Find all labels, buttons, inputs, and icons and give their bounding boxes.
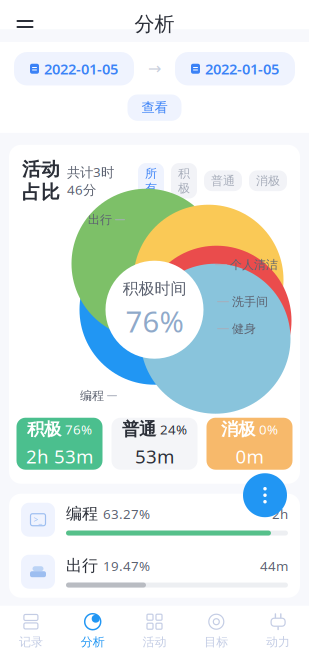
staticText: 76% — [65, 420, 92, 438]
staticText: 分析 — [134, 12, 174, 36]
staticText: 所有 — [145, 166, 157, 195]
staticText: 0% — [259, 420, 278, 438]
staticText: 活动占比 — [22, 158, 60, 204]
button[interactable]: 消极 — [206, 418, 292, 470]
button[interactable]: More options — [243, 473, 287, 517]
staticText: 积极时间 — [122, 279, 186, 299]
button[interactable]: 普通 — [204, 170, 242, 191]
staticText: 分析 — [81, 635, 105, 649]
staticText: 查看 — [141, 99, 167, 116]
button[interactable]: 消极 — [249, 170, 287, 191]
button[interactable]: 普通 — [111, 418, 197, 470]
staticText: 积极 — [178, 166, 190, 195]
staticText: 积极 — [27, 419, 61, 440]
staticText: 动力 — [266, 635, 290, 649]
staticText: 24% — [160, 420, 187, 438]
staticText: 2h 53m — [26, 444, 93, 469]
staticText: 76% — [125, 302, 183, 341]
button[interactable]: Menu — [10, 9, 40, 39]
staticText: 普通 — [211, 173, 235, 188]
staticText: 2022-01-05 — [44, 59, 118, 78]
staticText: 消极 — [256, 173, 280, 188]
staticText: 出行 — [66, 556, 98, 576]
staticText: 健身 — [232, 321, 256, 336]
staticText: 记录 — [19, 635, 43, 649]
staticText: 编程 — [66, 504, 98, 524]
staticText: 0m — [235, 444, 263, 469]
staticText: 活动 — [142, 635, 166, 649]
staticText: 洗手间 — [232, 294, 268, 309]
button[interactable]: 目标 — [185, 613, 247, 649]
staticText: >_ — [33, 514, 42, 525]
button[interactable]: 积极 — [16, 418, 102, 470]
button[interactable]: 分析 — [62, 613, 124, 649]
staticText: 普通 — [122, 419, 156, 440]
button[interactable]: 活动 — [124, 613, 185, 649]
staticText: 出行 — [88, 212, 112, 227]
staticText: 目标 — [204, 635, 228, 649]
staticText: 消极 — [221, 419, 255, 440]
button[interactable]: 2022-01-05 — [14, 52, 134, 85]
staticText: 19.47% — [103, 557, 150, 575]
staticText: 2h — [272, 505, 288, 523]
button[interactable]: 2022-01-05 — [175, 52, 295, 85]
staticText: 共计3时46分 — [67, 163, 114, 198]
button[interactable]: 动力 — [247, 613, 309, 649]
staticText: 个人清洁 — [230, 257, 278, 272]
staticText: → — [148, 60, 161, 78]
button[interactable]: 所有 — [138, 163, 164, 198]
staticText: 63.27% — [103, 505, 150, 523]
staticText: 44m — [260, 557, 288, 575]
button[interactable]: >_ — [9, 494, 300, 546]
button[interactable]: 出行 — [9, 546, 300, 598]
staticText: 编程 — [80, 388, 104, 403]
staticText: 2022-01-05 — [205, 59, 279, 78]
button[interactable]: 记录 — [0, 613, 62, 649]
button[interactable]: 积极 — [171, 163, 197, 198]
button[interactable]: 查看 — [127, 94, 181, 121]
staticText: 53m — [135, 444, 174, 469]
